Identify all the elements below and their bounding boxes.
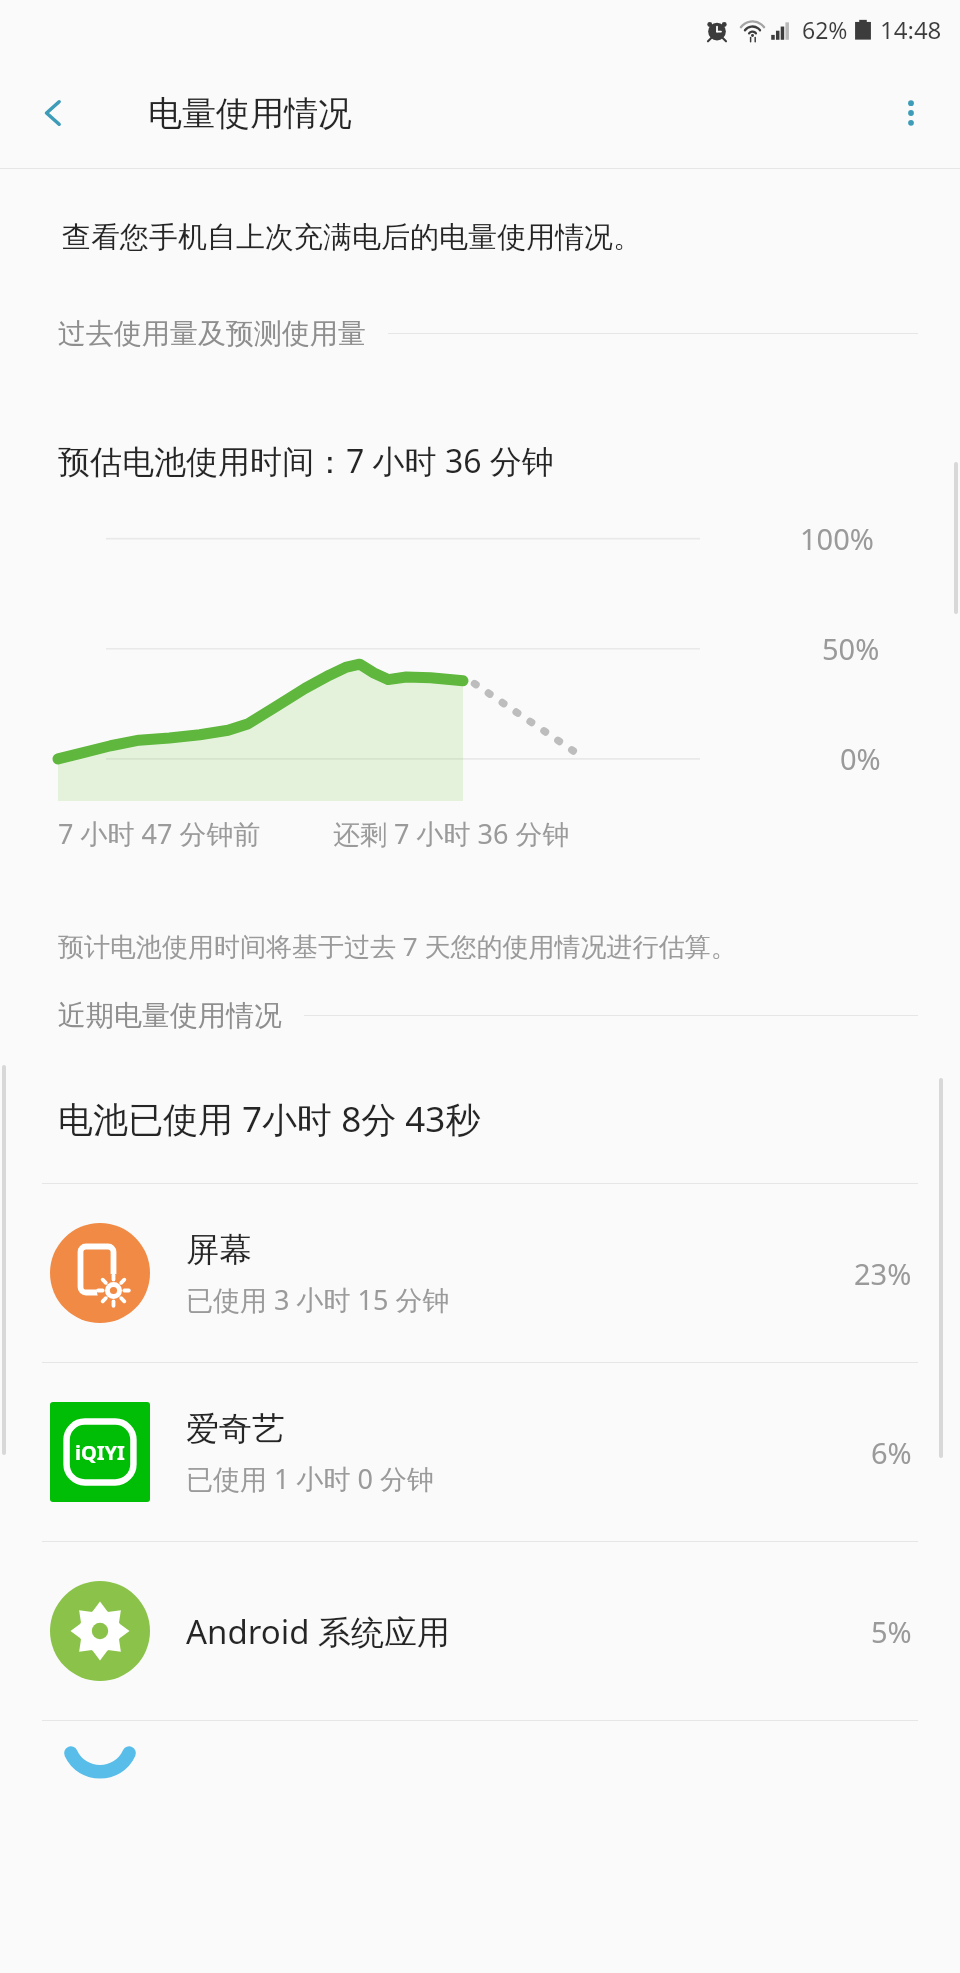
staticText: 近期电量使用情况 — [58, 998, 282, 1033]
staticText: 已使用 1 小时 0 分钟 — [186, 1460, 434, 1497]
staticText: 23% — [854, 1254, 912, 1293]
button[interactable]: 屏幕 — [0, 1184, 960, 1362]
button[interactable]: Android 系统应用 — [0, 1542, 960, 1720]
staticText: 过去使用量及预测使用量 — [58, 316, 366, 351]
staticText: 62% — [802, 14, 848, 45]
staticText: 预估电池使用时间：7 小时 36 分钟 — [58, 439, 554, 483]
staticText: 50% — [822, 629, 880, 668]
staticText: 100% — [800, 519, 874, 558]
staticText: 查看您手机自上次充满电后的电量使用情况。 — [62, 219, 642, 256]
staticText: 14:48 — [880, 13, 942, 46]
staticText: 7 小时 47 分钟前 — [58, 815, 261, 852]
staticText: 电量使用情况 — [148, 92, 352, 135]
staticText: 屏幕 — [186, 1229, 252, 1271]
staticText: Android 系统应用 — [186, 1609, 451, 1654]
staticText: 电池已使用 7小时 8分 43秒 — [58, 1095, 481, 1143]
button[interactable]: Back — [22, 82, 84, 144]
button[interactable]: More options — [880, 82, 942, 144]
staticText: 已使用 3 小时 15 分钟 — [186, 1281, 450, 1318]
staticText: 5% — [871, 1612, 912, 1651]
staticText: 0% — [840, 739, 881, 778]
button[interactable]: iQIYI — [0, 1363, 960, 1541]
staticText: iQIYI — [75, 1439, 125, 1466]
staticText: 爱奇艺 — [186, 1408, 285, 1450]
staticText: 预计电池使用时间将基于过去 7 天您的使用情况进行估算。 — [58, 928, 737, 964]
staticText: 还剩 7 小时 36 分钟 — [333, 815, 570, 852]
staticText: 6% — [871, 1433, 912, 1472]
button[interactable] — [0, 1721, 960, 1811]
